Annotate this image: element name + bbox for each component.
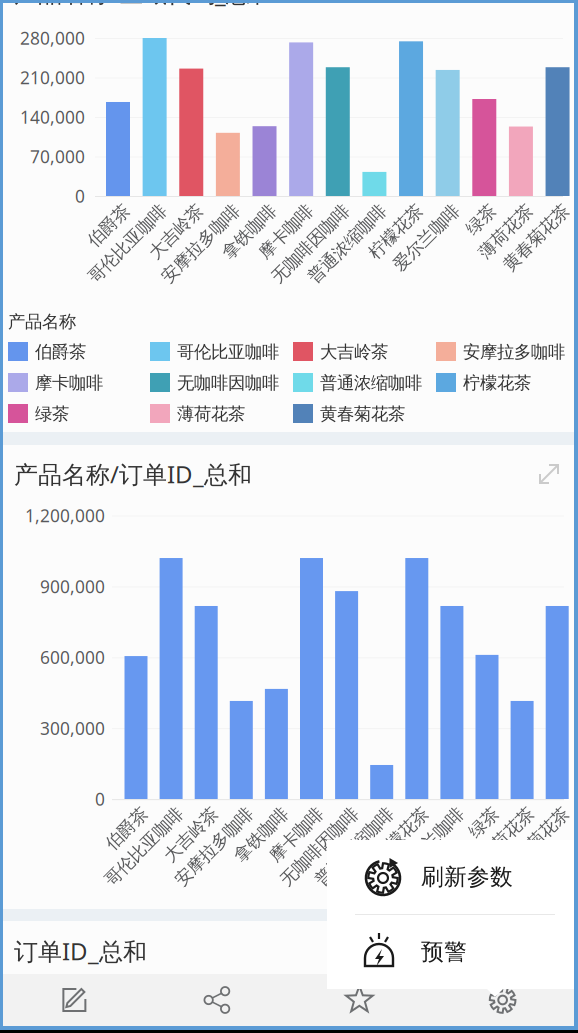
staticText: 柠檬花茶	[463, 372, 531, 394]
staticText: 绿茶	[455, 803, 489, 824]
staticText: 柠檬花茶	[345, 200, 413, 221]
staticText: 安摩拉多咖啡	[128, 200, 230, 221]
staticText: 薄荷花茶	[177, 403, 245, 425]
button[interactable]: 柠檬花茶	[436, 372, 576, 394]
staticText: 280,000	[20, 26, 85, 49]
staticText: 拿铁咖啡	[210, 803, 278, 824]
staticText: 产品名称/区域代码_总和	[14, 0, 274, 9]
button[interactable]: 刷新参数	[327, 840, 576, 914]
staticText: 柠檬花茶	[351, 803, 419, 824]
staticText: 黄春菊花茶	[474, 803, 559, 824]
button[interactable]: 预警	[327, 915, 576, 989]
button[interactable]: 哥伦比亚咖啡	[150, 341, 290, 363]
button[interactable]: 伯爵茶	[8, 341, 148, 363]
button[interactable]: 设置	[431, 974, 574, 1026]
staticText: 薄荷花茶	[456, 803, 524, 824]
staticText: 伯爵茶	[69, 200, 120, 221]
button[interactable]: 收藏	[288, 974, 431, 1026]
staticText: 摩卡咖啡	[35, 372, 103, 394]
staticText: 产品名称	[8, 311, 76, 332]
staticText: 普通浓缩咖啡	[282, 803, 384, 824]
staticText: 大吉岭茶	[320, 341, 388, 363]
staticText: 大吉岭茶	[125, 200, 193, 221]
staticText: 安摩拉多咖啡	[141, 803, 243, 824]
button[interactable]: 大吉岭茶	[293, 341, 433, 363]
staticText: 300,000	[40, 717, 105, 740]
staticText: 140,000	[20, 105, 85, 128]
staticText: 预警	[421, 938, 467, 966]
staticText: 绿茶	[35, 403, 69, 425]
staticText: 无咖啡因咖啡	[238, 200, 340, 221]
button[interactable]: 摩卡咖啡	[8, 372, 148, 394]
staticText: 大吉岭茶	[140, 803, 208, 824]
staticText: 拿铁咖啡	[198, 200, 266, 221]
staticText: 伯爵茶	[87, 803, 138, 824]
staticText: 900,000	[40, 575, 105, 598]
staticText: 摩卡咖啡	[245, 803, 313, 824]
staticText: 无咖啡因咖啡	[177, 372, 279, 394]
staticText: 刷新参数	[421, 863, 513, 891]
button[interactable]: 分享	[146, 974, 289, 1026]
staticText: 安摩拉多咖啡	[463, 341, 565, 363]
staticText: 薄荷花茶	[455, 200, 523, 221]
button[interactable]: 黄春菊花茶	[293, 403, 433, 425]
staticText: 0	[95, 788, 105, 811]
staticText: 爱尔兰咖啡	[369, 803, 454, 824]
staticText: 无咖啡因咖啡	[247, 803, 349, 824]
staticText: 哥伦比亚咖啡	[71, 803, 173, 824]
staticText: 普通浓缩咖啡	[274, 200, 376, 221]
staticText: 黄春菊花茶	[475, 200, 560, 221]
staticText: 210,000	[20, 66, 85, 89]
staticText: 哥伦比亚咖啡	[177, 341, 279, 363]
staticText: 爱尔兰咖啡	[365, 200, 450, 221]
staticText: 哥伦比亚咖啡	[55, 200, 157, 221]
button[interactable]: 无咖啡因咖啡	[150, 372, 290, 394]
staticText: 绿茶	[452, 200, 486, 221]
staticText: 黄春菊花茶	[320, 403, 405, 425]
staticText: 摩卡咖啡	[235, 200, 303, 221]
staticText: 0	[75, 184, 85, 207]
staticText: 普通浓缩咖啡	[320, 372, 422, 394]
staticText: 1,200,000	[25, 504, 105, 527]
button[interactable]: 绿茶	[8, 403, 148, 425]
staticText: 70,000	[30, 145, 85, 168]
staticText: 订单ID_总和	[14, 935, 147, 967]
staticText: 产品名称/订单ID_总和	[14, 458, 252, 490]
button[interactable]: 普通浓缩咖啡	[293, 372, 433, 394]
button[interactable]: 编辑	[3, 974, 146, 1026]
staticText: 伯爵茶	[35, 341, 86, 363]
button[interactable]: 安摩拉多咖啡	[436, 341, 576, 363]
button[interactable]: 薄荷花茶	[150, 403, 290, 425]
staticText: 600,000	[40, 646, 105, 669]
button[interactable]: 全屏	[537, 462, 561, 486]
